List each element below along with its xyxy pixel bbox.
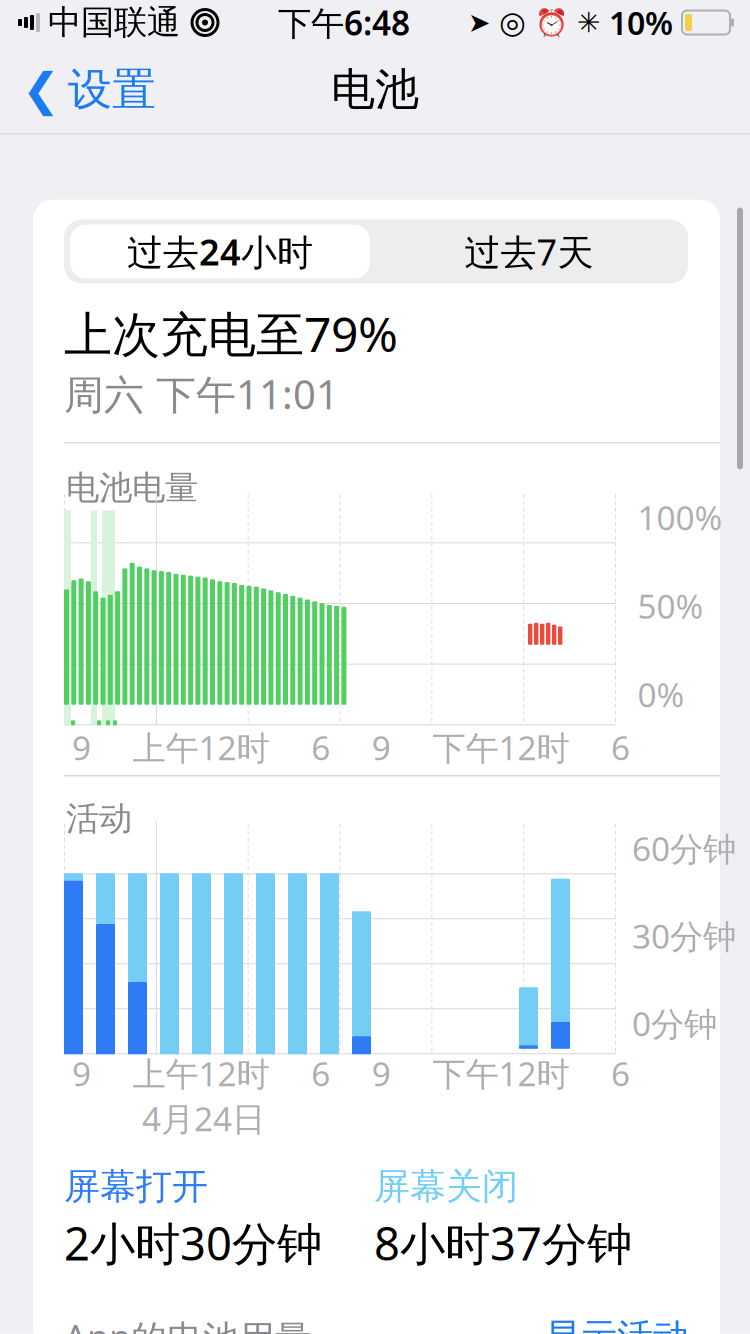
staticText: 0% [637,672,684,716]
staticText: 6 [611,725,630,769]
staticText: 10% [609,1,673,44]
staticText: 9 [72,725,91,769]
staticText: 设置 [68,62,156,116]
staticText: 60分钟 [632,826,736,870]
staticText: 9 [372,1051,391,1095]
staticText: 周六 下午11:01 [64,367,339,420]
staticText: 100% [637,495,722,539]
button[interactable]: 过去24小时 [67,222,373,280]
staticText: 过去7天 [464,228,593,275]
staticText: 50% [637,584,703,628]
staticText: 电池电量 [66,467,198,508]
staticText: 电池 [331,62,419,116]
staticText: ➤ [468,7,490,38]
staticText: 中国联通 [48,2,180,43]
staticText: 6 [311,725,330,769]
staticText: 0分钟 [632,1001,717,1045]
staticText: 30分钟 [632,914,736,958]
staticText: 2小时30分钟 [64,1213,322,1273]
button[interactable]: 过去7天 [373,222,685,280]
staticText: 9 [72,1051,91,1095]
staticText: ❮ [22,64,60,115]
staticText: 上次充电至79% [64,301,398,365]
staticText: 4月24日 [142,1096,265,1140]
staticText: App的电池用量 [64,1313,311,1334]
staticText: 活动 [66,798,132,839]
staticText: 下午12时 [432,725,569,769]
staticText: ◎ [499,5,526,40]
staticText: 上午12时 [133,1051,270,1095]
staticText: ✳ [577,7,600,38]
staticText: 9 [372,725,391,769]
staticText: 6 [311,1051,330,1095]
staticText: 屏幕关闭 [374,1164,518,1209]
staticText: 过去24小时 [127,228,313,275]
staticText: 上午12时 [133,725,270,769]
button[interactable]: ❮ [0,54,156,124]
staticText: ⏰ [535,7,568,38]
staticText: 屏幕打开 [64,1164,208,1209]
staticText: 6 [611,1051,630,1095]
button[interactable]: 显示活动 [545,1309,689,1334]
staticText: 下午6:48 [278,0,410,45]
staticText: 下午12时 [432,1051,569,1095]
staticText: 显示活动 [545,1315,689,1334]
staticText: 8小时37分钟 [374,1213,632,1273]
